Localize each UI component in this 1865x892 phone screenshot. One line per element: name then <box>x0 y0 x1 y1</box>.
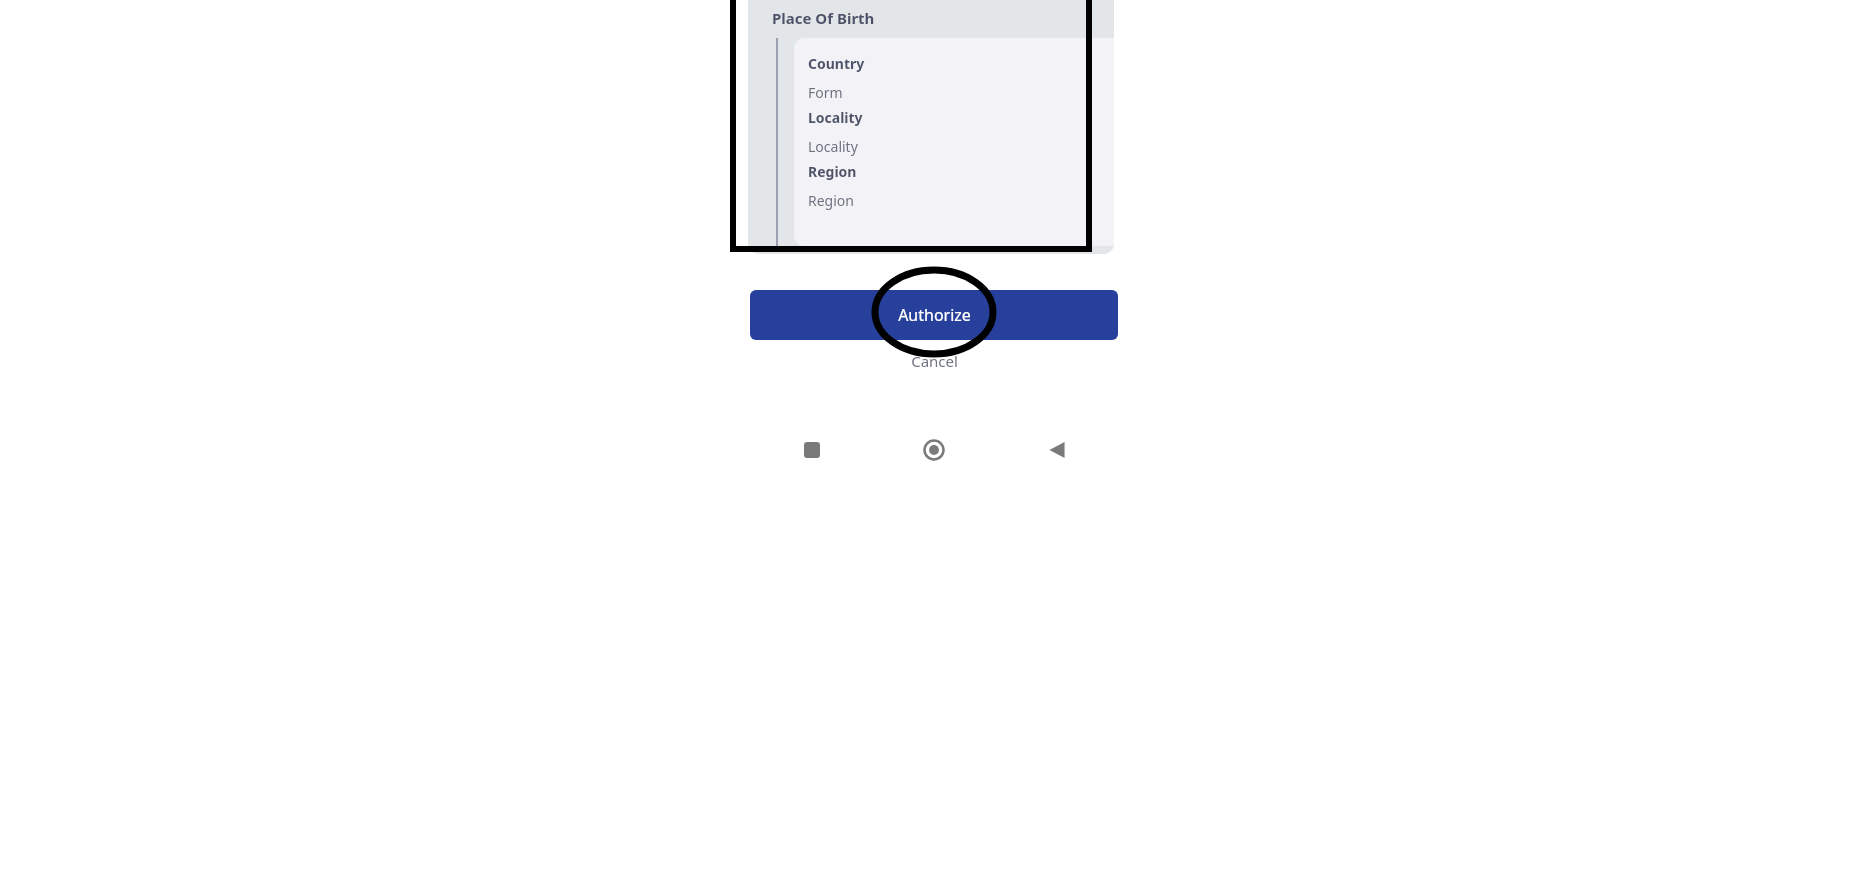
staticText: Authorize <box>898 304 971 326</box>
staticText: Place Of Birth <box>772 8 875 28</box>
button[interactable]: Back <box>995 425 1118 475</box>
button[interactable]: Authorize <box>750 290 1118 340</box>
button[interactable]: Cancel <box>750 346 1118 376</box>
staticText: Region <box>808 191 854 210</box>
staticText: Form <box>808 83 843 102</box>
button[interactable]: Home <box>873 425 995 475</box>
staticText: Country <box>808 54 865 73</box>
button[interactable]: Recent apps <box>750 425 873 475</box>
staticText: Cancel <box>911 351 958 371</box>
staticText: Locality <box>808 137 858 156</box>
staticText: Region <box>808 162 857 181</box>
staticText: Locality <box>808 108 863 127</box>
